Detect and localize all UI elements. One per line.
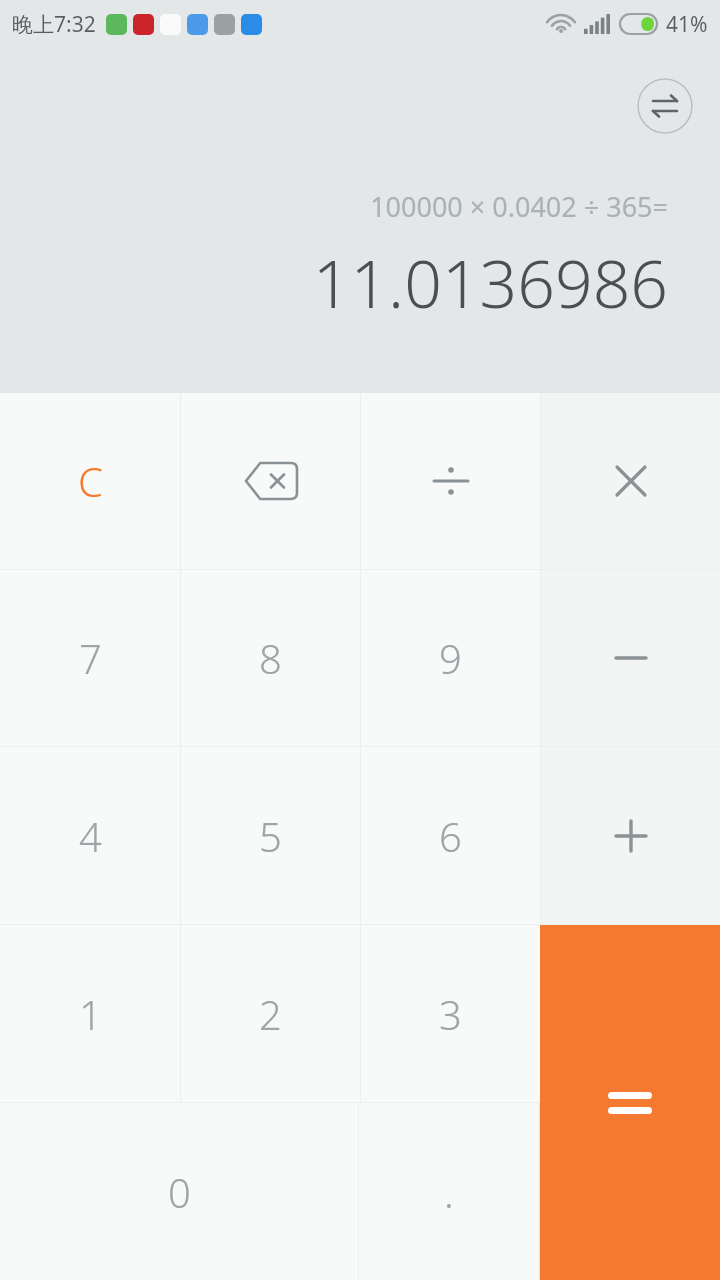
- button[interactable]: 1: [0, 925, 180, 1102]
- button[interactable]: 0: [0, 1103, 358, 1280]
- button[interactable]: 7: [0, 570, 180, 746]
- staticText: .: [444, 1165, 454, 1219]
- staticText: 3: [439, 987, 462, 1041]
- button[interactable]: 2: [181, 925, 360, 1102]
- staticText: 11.0136986: [312, 237, 668, 327]
- button[interactable]: Backspace: [181, 393, 360, 569]
- button[interactable]: Equals: [540, 925, 720, 1280]
- button[interactable]: 3: [361, 925, 540, 1102]
- staticText: 5: [259, 809, 282, 863]
- button[interactable]: Multiply: [541, 393, 720, 569]
- staticText: 0: [168, 1165, 191, 1219]
- staticText: 41%: [666, 10, 708, 39]
- staticText: 晚上7:32: [12, 10, 96, 39]
- button[interactable]: Plus: [541, 747, 720, 924]
- button[interactable]: Unit converter: [637, 78, 693, 134]
- staticText: 1: [79, 987, 102, 1041]
- staticText: 100000 × 0.0402 ÷ 365=: [370, 188, 668, 225]
- staticText: 4: [79, 809, 102, 863]
- staticText: 2: [259, 987, 282, 1041]
- staticText: 6: [439, 809, 462, 863]
- staticText: 8: [259, 631, 282, 685]
- button[interactable]: 8: [181, 570, 360, 746]
- button[interactable]: C: [0, 393, 180, 569]
- button[interactable]: 9: [361, 570, 540, 746]
- staticText: 9: [439, 631, 462, 685]
- staticText: 7: [79, 631, 102, 685]
- button[interactable]: 6: [361, 747, 540, 924]
- button[interactable]: Minus: [541, 570, 720, 746]
- button[interactable]: Divide: [361, 393, 540, 569]
- button[interactable]: 5: [181, 747, 360, 924]
- staticText: C: [78, 454, 103, 508]
- button[interactable]: 4: [0, 747, 180, 924]
